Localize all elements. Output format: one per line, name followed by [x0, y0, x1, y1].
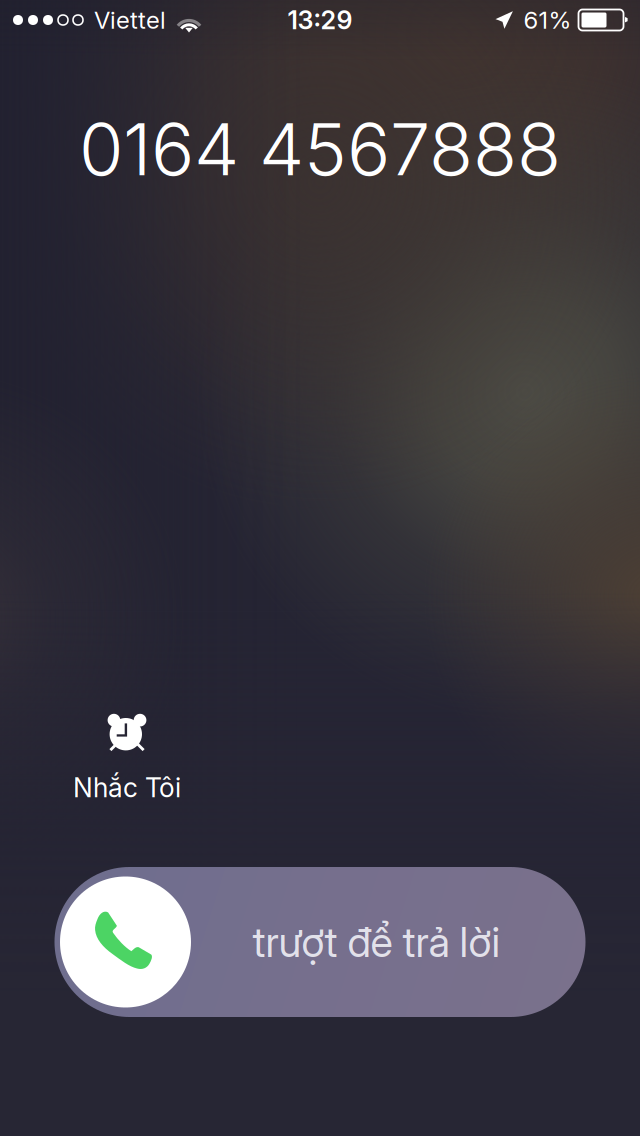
staticText: 0164 4567888: [79, 105, 561, 192]
staticText: Nhắc Tôi: [73, 771, 181, 804]
staticText: 13:29: [287, 5, 352, 35]
button[interactable]: Nhắc Tôi: [52, 708, 202, 801]
staticText: trượt để trả lời: [252, 917, 500, 967]
button[interactable]: trượt để trả lời: [54, 867, 585, 1017]
staticText: 61%: [523, 5, 571, 34]
staticText: Viettel: [94, 5, 166, 34]
